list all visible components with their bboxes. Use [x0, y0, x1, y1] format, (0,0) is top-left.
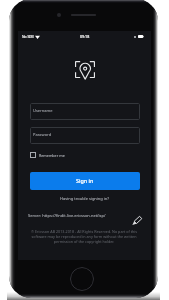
- staticText: Password: [33, 132, 52, 137]
- button[interactable]: Edit server address: [131, 214, 143, 226]
- button[interactable]: Remember me: [30, 152, 65, 158]
- button[interactable]: Having trouble signing in?: [60, 196, 110, 201]
- staticText: No SIM: [22, 34, 34, 39]
- button[interactable]: Sign in: [30, 172, 140, 190]
- button[interactable]: Password: [30, 127, 140, 144]
- staticText: Remember me: [39, 153, 65, 158]
- staticText: Sign in: [76, 177, 94, 184]
- staticText: Username: [33, 108, 53, 113]
- staticText: © Ericsson AB 2013-2018 - All Rights Res…: [30, 229, 138, 244]
- staticText: 09:18: [80, 34, 90, 39]
- button[interactable]: Username: [30, 103, 140, 120]
- button[interactable]: Server: https://findit.live.ericsson.net…: [28, 213, 106, 218]
